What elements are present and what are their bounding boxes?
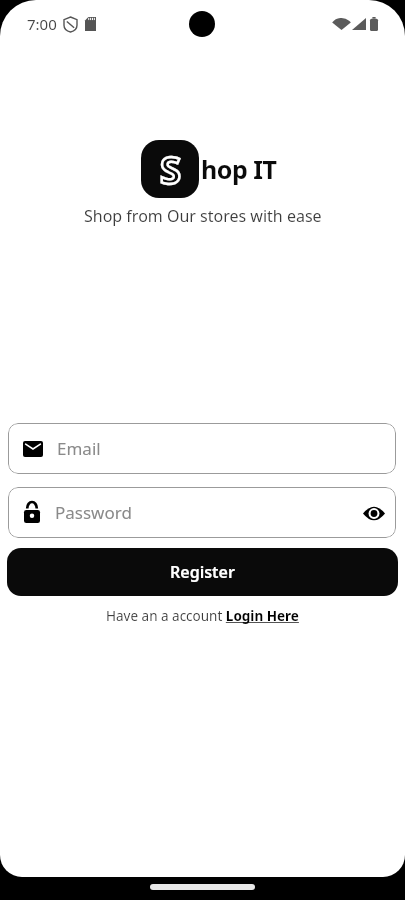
- staticText: 7:00: [27, 14, 57, 34]
- button[interactable]: [359, 498, 389, 528]
- button[interactable]: Email: [8, 423, 396, 474]
- staticText: S: [160, 143, 181, 195]
- staticText: Register: [170, 561, 235, 583]
- staticText: Shop from Our stores with ease: [84, 205, 322, 227]
- staticText: Password: [55, 501, 132, 524]
- button[interactable]: Register: [7, 548, 398, 596]
- button[interactable]: Password: [8, 487, 396, 538]
- staticText: hop IT: [201, 152, 277, 186]
- button[interactable]: Have an a account Login Here: [0, 604, 405, 628]
- staticText: Email: [57, 437, 101, 460]
- staticText: Have an a account Login Here: [106, 607, 299, 625]
